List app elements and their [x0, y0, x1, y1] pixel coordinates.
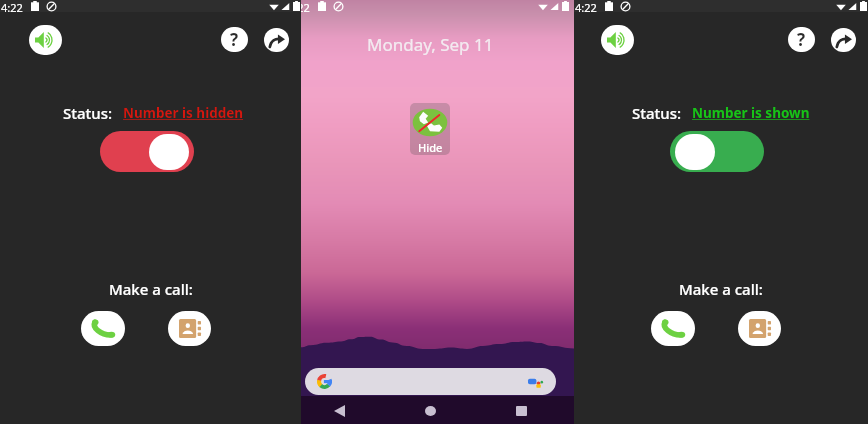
button[interactable]: Toggle sound — [601, 25, 634, 55]
staticText: Hide — [418, 140, 443, 155]
button[interactable]: Dial — [81, 311, 125, 346]
button[interactable]: Toggle sound — [29, 25, 62, 55]
staticText: ? — [797, 28, 806, 51]
button[interactable]: Hide number switch — [670, 131, 764, 172]
button[interactable]: Hide number switch — [100, 131, 194, 172]
button[interactable]: Contacts — [168, 311, 211, 346]
staticText: Number is shown — [692, 104, 810, 122]
button[interactable]: Dial — [651, 311, 695, 346]
staticText: Status: — [63, 103, 113, 123]
button[interactable]: Recent apps — [476, 398, 567, 424]
staticText: 4:22 — [301, 0, 310, 12]
button[interactable]: Help — [788, 27, 815, 52]
staticText: Monday, Sep 11 — [367, 33, 494, 56]
staticText: 4:22 — [1, 0, 23, 12]
staticText: 4:22 — [575, 0, 597, 12]
button[interactable]: Help — [221, 27, 248, 52]
button[interactable]: Home — [385, 398, 476, 424]
button[interactable]: Contacts — [738, 311, 781, 346]
staticText: Number is hidden — [123, 104, 244, 122]
button[interactable]: Hide app — [410, 103, 450, 155]
button[interactable]: Share — [264, 28, 289, 52]
button[interactable]: Share — [831, 28, 856, 52]
staticText: Status: — [632, 103, 682, 123]
button[interactable]: Search — [305, 368, 556, 395]
staticText: Make a call: — [679, 279, 763, 299]
staticText: Make a call: — [109, 279, 193, 299]
button[interactable]: Back — [294, 398, 385, 424]
staticText: ? — [230, 28, 239, 51]
